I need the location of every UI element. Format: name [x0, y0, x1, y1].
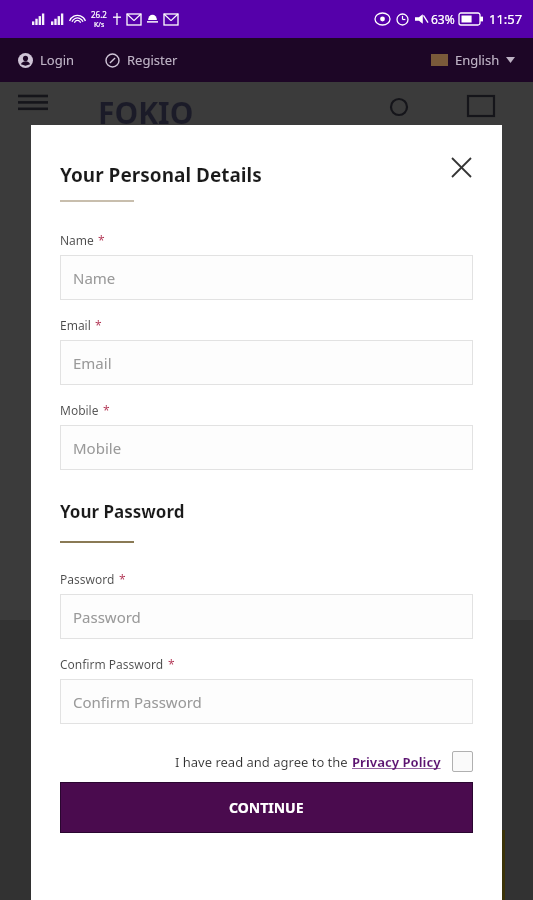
staticText: I have read and agree to the — [175, 753, 352, 771]
staticText: K/s — [94, 20, 105, 30]
button[interactable]: Password — [60, 594, 473, 639]
button[interactable]: Close — [441, 147, 481, 187]
staticText: * — [95, 317, 102, 333]
staticText: CONTINUE — [229, 798, 304, 817]
staticText: Login — [40, 51, 75, 69]
staticText: Email — [60, 317, 91, 333]
button[interactable]: Name — [60, 255, 473, 300]
staticText: Name — [60, 232, 94, 248]
staticText: English — [455, 51, 500, 69]
staticText: Password — [60, 571, 115, 587]
staticText: 26.2 — [91, 9, 107, 20]
staticText: Confirm Password — [60, 656, 164, 672]
staticText: 11:57 — [489, 10, 523, 28]
button[interactable]: Register — [101, 47, 182, 73]
staticText: Your Personal Details — [60, 162, 262, 188]
button[interactable]: Email — [60, 340, 473, 385]
button[interactable]: Mobile — [60, 425, 473, 470]
staticText: Register — [127, 51, 178, 69]
staticText: * — [103, 402, 110, 418]
button[interactable]: Privacy Policy — [352, 753, 441, 771]
staticText: * — [119, 571, 126, 587]
button[interactable]: Confirm Password — [60, 679, 473, 724]
staticText: Your Password — [60, 500, 185, 523]
staticText: FOKIO — [98, 92, 194, 133]
staticText: Confirm Password — [73, 692, 202, 712]
staticText: Password — [73, 607, 141, 627]
button[interactable]: English — [427, 47, 519, 73]
button[interactable]: Login — [14, 47, 79, 73]
staticText: * — [98, 232, 105, 248]
staticText: Mobile — [73, 438, 122, 458]
staticText: * — [168, 656, 175, 672]
staticText: Email — [73, 353, 112, 373]
staticText: Mobile — [60, 402, 99, 418]
button[interactable]: Agree to Privacy Policy — [452, 751, 473, 772]
staticText: 63% — [431, 11, 455, 27]
staticText: Name — [73, 268, 116, 288]
staticText: Privacy Policy — [352, 753, 441, 771]
button[interactable]: CONTINUE — [60, 782, 473, 833]
